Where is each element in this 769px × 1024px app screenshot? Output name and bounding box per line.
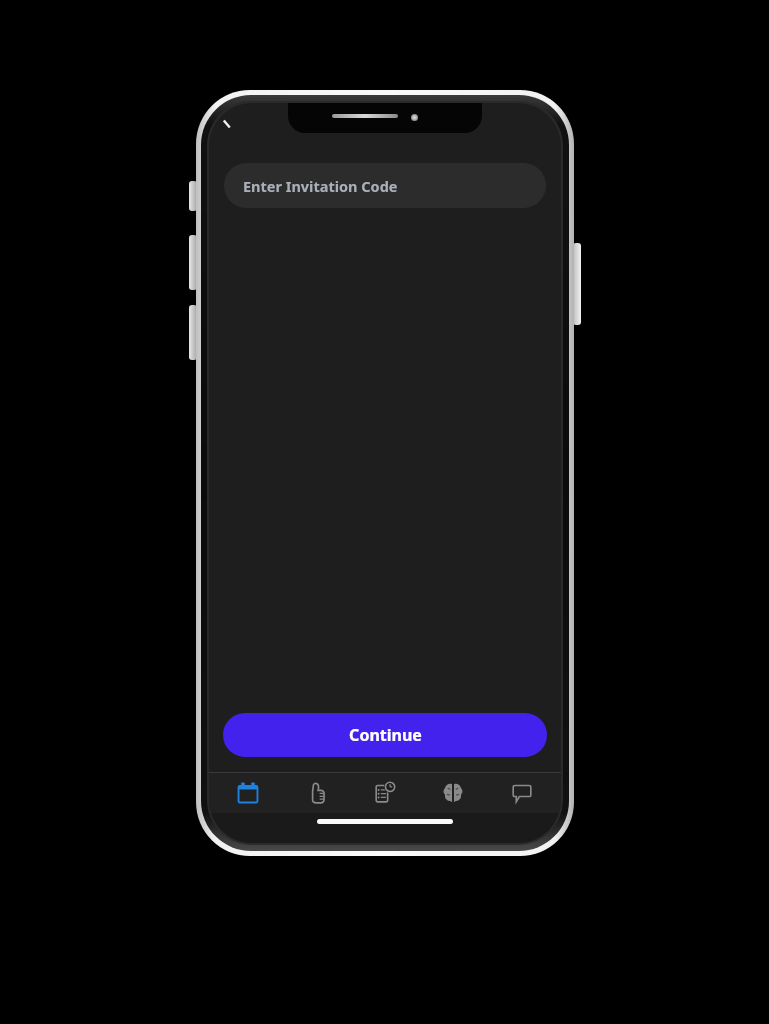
- staticText: Continue: [349, 724, 422, 746]
- button[interactable]: Tasks: [356, 773, 414, 813]
- button[interactable]: Schedule: [219, 773, 277, 813]
- button[interactable]: Insights: [424, 773, 482, 813]
- button[interactable]: Likes: [288, 773, 346, 813]
- button[interactable]: Messages: [493, 773, 551, 813]
- button[interactable]: Continue: [223, 713, 547, 757]
- staticText: Enter Invitation Code: [243, 176, 398, 196]
- button[interactable]: Enter Invitation Code: [224, 163, 546, 208]
